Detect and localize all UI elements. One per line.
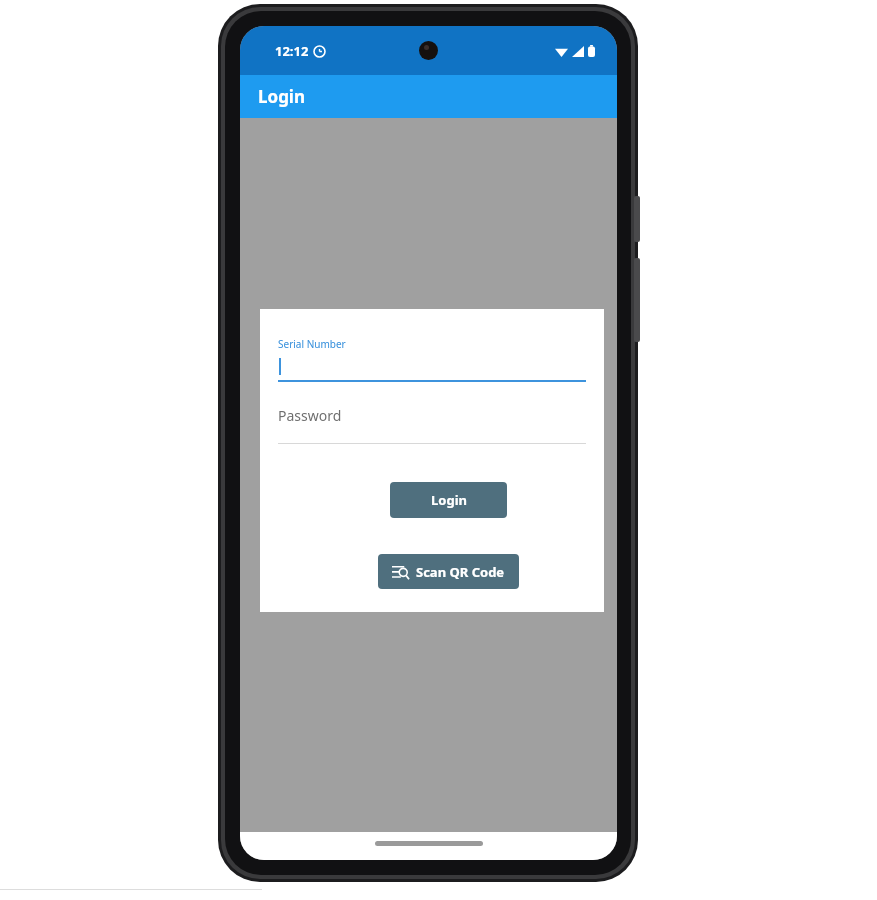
other: Scan QR Code (392, 563, 409, 580)
staticText: Serial Number (278, 337, 346, 351)
button[interactable]: Scan QR Code (378, 554, 519, 589)
button[interactable]: Login (390, 482, 507, 518)
staticText: Login (431, 491, 467, 509)
staticText: 12:12 (275, 42, 309, 60)
staticText: Scan QR Code (416, 563, 505, 581)
staticText: Password (278, 406, 342, 425)
button[interactable]: Password (278, 406, 586, 444)
staticText: Login (258, 85, 306, 108)
button[interactable]: Serial Number (278, 337, 586, 382)
